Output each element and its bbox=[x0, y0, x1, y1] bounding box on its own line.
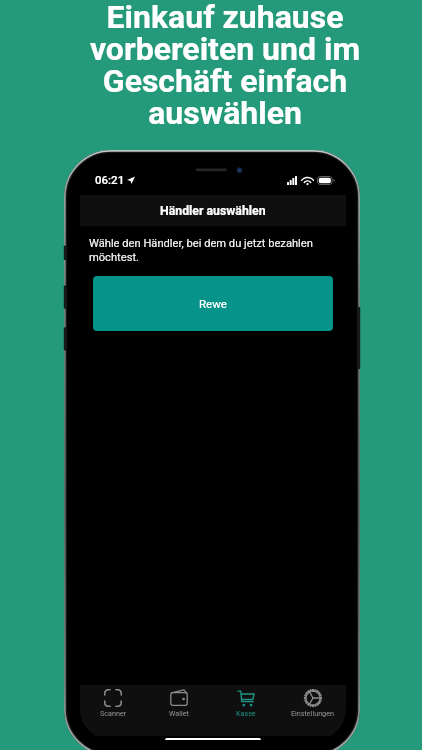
button[interactable]: Einstellungen bbox=[279, 685, 346, 736]
button[interactable]: Scanner bbox=[80, 685, 146, 736]
button[interactable]: Rewe bbox=[93, 276, 333, 331]
staticText: Wallet bbox=[169, 709, 189, 717]
staticText: 06:21 bbox=[95, 173, 125, 186]
staticText: Kasse bbox=[236, 709, 256, 717]
staticText: Rewe bbox=[199, 297, 227, 310]
staticText: Händler auswählen bbox=[160, 204, 266, 218]
staticText: Einkauf zuhause vorbereiten und im Gesch… bbox=[42, 0, 408, 132]
button[interactable]: Kasse bbox=[212, 685, 279, 736]
staticText: Scanner bbox=[100, 709, 127, 717]
button[interactable]: Händler auswählen bbox=[80, 195, 346, 226]
button[interactable]: Wallet bbox=[146, 685, 212, 736]
staticText: Wähle den Händler, bei dem du jetzt beza… bbox=[89, 237, 329, 264]
staticText: Einstellungen bbox=[291, 709, 334, 717]
